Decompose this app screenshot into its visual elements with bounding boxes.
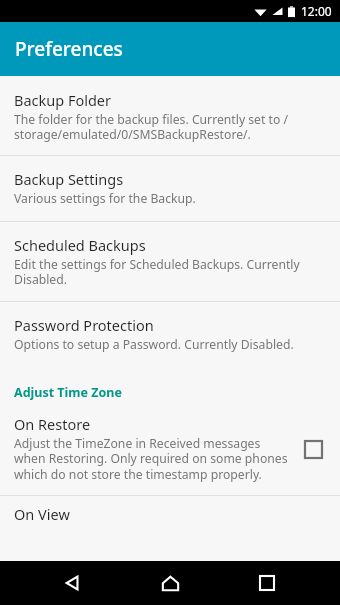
button[interactable]: Password Protection — [0, 302, 340, 366]
button[interactable]: Back — [49, 561, 97, 605]
button[interactable]: On Restore — [0, 414, 340, 495]
staticText: Scheduled Backups — [14, 235, 146, 255]
staticText: Backup Folder — [14, 90, 112, 110]
button[interactable]: Backup Settings — [0, 156, 340, 221]
button[interactable]: Recent apps — [243, 561, 291, 605]
staticText: The folder for the backup files. Current… — [14, 111, 328, 143]
button[interactable]: Scheduled Backups — [0, 222, 340, 301]
button[interactable]: Backup Folder — [0, 80, 340, 155]
staticText: Edit the settings for Scheduled Backups.… — [14, 256, 328, 288]
staticText: On Restore — [14, 414, 91, 434]
staticText: On View — [14, 504, 70, 524]
staticText: 12:00 — [301, 3, 332, 19]
button[interactable]: On View — [0, 496, 340, 524]
staticText: Various settings for the Backup. — [14, 190, 196, 207]
staticText: Backup Settings — [14, 169, 124, 189]
button[interactable]: On Restore toggle — [298, 434, 328, 464]
staticText: Adjust the TimeZone in Received messages… — [14, 435, 288, 483]
staticText: Adjust Time Zone — [14, 384, 122, 401]
staticText: Password Protection — [14, 315, 154, 335]
staticText: Options to setup a Password. Currently D… — [14, 336, 294, 353]
staticText: Preferences — [15, 36, 123, 62]
button[interactable]: Home — [146, 561, 194, 605]
